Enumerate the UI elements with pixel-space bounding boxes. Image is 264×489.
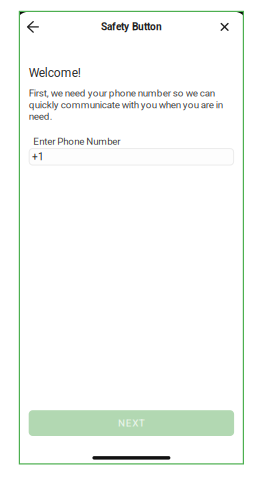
button[interactable]: Close	[213, 15, 237, 39]
staticText: Welcome!	[29, 66, 81, 80]
staticText: +1	[32, 151, 44, 163]
staticText: First, we need your phone number so we c…	[29, 87, 223, 122]
button[interactable]: NEXT	[29, 410, 234, 436]
staticText: Safety Button	[101, 21, 162, 33]
staticText: Enter Phone Number	[33, 136, 120, 147]
button[interactable]: Back	[21, 15, 45, 39]
staticText: NEXT	[118, 417, 145, 429]
